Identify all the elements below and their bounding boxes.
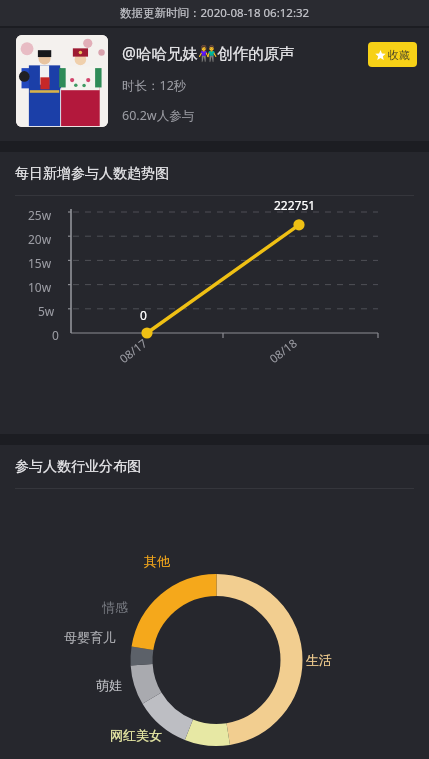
staticText: 222751 <box>274 197 316 213</box>
staticText: 母婴育儿 <box>64 629 116 645</box>
staticText: 每日新增参与人数趋势图 <box>15 165 169 183</box>
staticText: 萌娃 <box>96 677 122 693</box>
staticText: 60.2w人参与 <box>122 107 195 124</box>
staticText: 08/17 <box>116 335 151 367</box>
staticText: 收藏 <box>388 48 410 62</box>
staticText: 0 <box>140 307 147 323</box>
staticText: 0 <box>52 327 59 343</box>
staticText: 15w <box>28 255 52 271</box>
staticText: 参与人数行业分布图 <box>15 458 141 476</box>
staticText: 10w <box>28 279 52 295</box>
staticText: 其他 <box>144 553 170 569</box>
staticText: @哈哈兄妹👫创作的原声 <box>122 42 295 63</box>
staticText: 08/18 <box>266 335 301 367</box>
staticText: 25w <box>28 207 52 223</box>
staticText: 网红美女 <box>110 727 162 743</box>
button[interactable]: 收藏 <box>368 42 417 67</box>
staticText: 5w <box>38 303 55 319</box>
staticText: 情感 <box>102 599 128 615</box>
staticText: 生活 <box>306 652 332 668</box>
staticText: 数据更新时间：2020-08-18 06:12:32 <box>120 5 310 21</box>
staticText: 时长：12秒 <box>122 77 187 94</box>
staticText: 20w <box>28 231 52 247</box>
button[interactable]: Audio cover image <box>16 35 108 127</box>
